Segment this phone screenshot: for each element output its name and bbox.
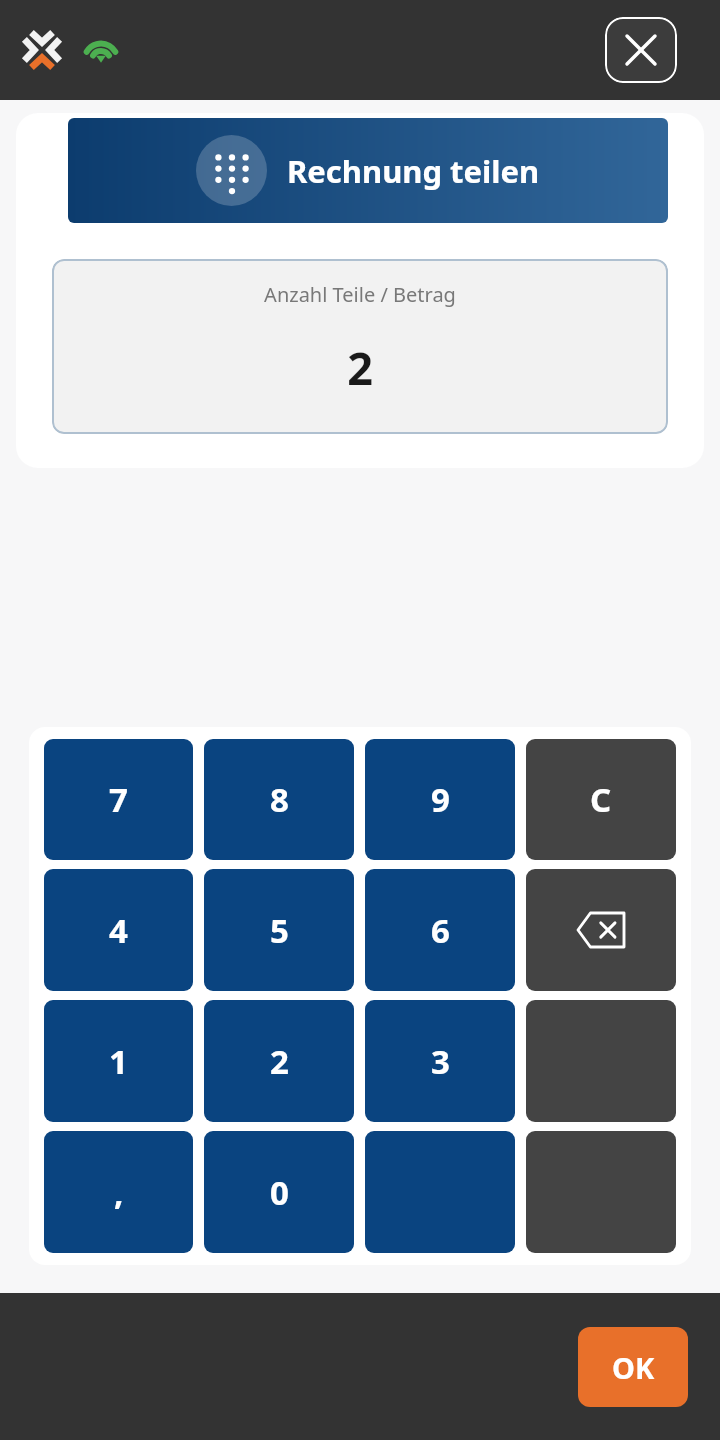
staticText: 1 [109,1039,128,1084]
button[interactable] [365,1131,515,1253]
staticText: OK [612,1348,655,1387]
staticText: 2 [270,1039,289,1084]
button[interactable]: 8 [204,739,354,860]
button[interactable]: Close [605,17,677,83]
staticText: 0 [270,1170,289,1215]
button[interactable]: 1 [44,1000,193,1122]
button[interactable]: 3 [365,1000,515,1122]
button[interactable]: 2 [204,1000,354,1122]
staticText: 5 [270,908,289,953]
staticText: C [590,777,612,822]
button[interactable]: 6 [365,869,515,991]
button[interactable]: Anzahl Teile / Betrag [52,259,668,434]
button[interactable]: , [44,1131,193,1253]
staticText: Anzahl Teile / Betrag [264,281,456,308]
staticText: 4 [109,908,128,953]
staticText: Rechnung teilen [287,150,540,192]
button[interactable]: 4 [44,869,193,991]
staticText: 7 [109,777,128,822]
button[interactable]: OK [578,1327,688,1407]
button[interactable]: Rechnung teilen [68,118,668,223]
staticText: 3 [431,1039,450,1084]
button[interactable]: 7 [44,739,193,860]
button[interactable] [526,1000,676,1122]
button[interactable]: 9 [365,739,515,860]
staticText: 9 [431,777,450,822]
button[interactable] [526,1131,676,1253]
button[interactable]: Backspace [526,869,676,991]
staticText: 6 [431,908,450,953]
staticText: 8 [270,777,289,822]
button[interactable]: 5 [204,869,354,991]
button[interactable]: 0 [204,1131,354,1253]
staticText: , [114,1170,124,1215]
button[interactable]: C [526,739,676,860]
staticText: 2 [347,337,373,398]
